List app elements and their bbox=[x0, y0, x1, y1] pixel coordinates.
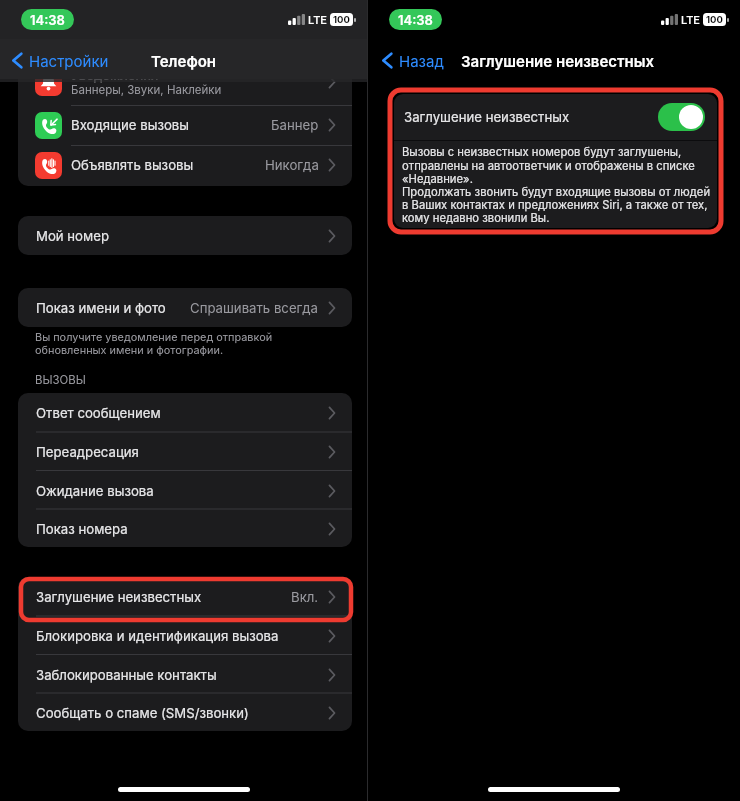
staticText: Назад bbox=[399, 52, 444, 70]
button[interactable]: Заглушение неизвестных bbox=[18, 577, 352, 616]
staticText: Вы получите уведомление перед отправкой … bbox=[35, 330, 273, 357]
staticText: LTE bbox=[308, 13, 327, 26]
staticText: 14:38 bbox=[30, 12, 65, 28]
button[interactable]: Переадресация bbox=[18, 432, 352, 471]
staticText: Уведомления bbox=[71, 76, 159, 83]
button[interactable]: Заблокированные контакты bbox=[18, 655, 352, 694]
staticText: 14:38 bbox=[398, 12, 433, 28]
staticText: Заглушение неизвестных bbox=[36, 589, 202, 605]
staticText: LTE bbox=[681, 13, 700, 26]
staticText: Ответ сообщением bbox=[36, 405, 161, 421]
staticText: Блокировка и идентификация вызова bbox=[36, 628, 279, 644]
button[interactable]: Уведомления bbox=[18, 76, 352, 105]
staticText: Показ номера bbox=[36, 521, 128, 537]
staticText: Настройки bbox=[29, 52, 109, 70]
staticText: Показ имени и фото bbox=[36, 300, 166, 316]
staticText: Баннер bbox=[271, 117, 319, 133]
button[interactable]: Сообщать о спаме (SMS/звонки) bbox=[18, 694, 352, 731]
button[interactable]: Показ номера bbox=[18, 510, 352, 547]
button[interactable]: Заглушение неизвестных, включено bbox=[658, 103, 705, 131]
staticText: Сообщать о спаме (SMS/звонки) bbox=[36, 705, 249, 721]
staticText: 100 bbox=[706, 14, 723, 25]
staticText: Вызовы с неизвестных номеров будут заглу… bbox=[402, 145, 711, 224]
staticText: Мой номер bbox=[36, 228, 109, 244]
staticText: Телефон bbox=[151, 52, 217, 70]
staticText: Вкл. bbox=[291, 589, 319, 605]
button[interactable]: Ожидание вызова bbox=[18, 471, 352, 510]
button[interactable]: Back bbox=[12, 39, 109, 82]
other: Back bbox=[12, 51, 23, 70]
button[interactable]: Заглушение неизвестных bbox=[394, 94, 717, 140]
staticText: Баннеры, Звуки, Наклейки bbox=[71, 83, 222, 97]
button[interactable]: Объявлять вызовы bbox=[18, 145, 352, 185]
button[interactable]: Показ имени и фото bbox=[18, 288, 352, 327]
button[interactable]: Back bbox=[382, 39, 444, 82]
staticText: Заблокированные контакты bbox=[36, 667, 217, 683]
staticText: Заглушение неизвестных bbox=[404, 109, 570, 125]
staticText: Объявлять вызовы bbox=[71, 157, 194, 173]
staticText: Ожидание вызова bbox=[36, 483, 154, 499]
other: Back bbox=[382, 51, 393, 70]
staticText: 100 bbox=[333, 14, 350, 25]
staticText: Спрашивать всегда bbox=[190, 300, 319, 316]
button[interactable]: Ответ сообщением bbox=[18, 393, 352, 432]
staticText: ВЫЗОВЫ bbox=[35, 373, 86, 387]
staticText: Переадресация bbox=[36, 444, 139, 460]
button[interactable]: Блокировка и идентификация вызова bbox=[18, 616, 352, 655]
staticText: Заглушение неизвестных bbox=[461, 52, 655, 70]
staticText: Никогда bbox=[265, 157, 319, 173]
staticText: Входящие вызовы bbox=[71, 117, 190, 133]
button[interactable]: Входящие вызовы bbox=[18, 105, 352, 145]
button[interactable]: Мой номер bbox=[18, 216, 352, 255]
